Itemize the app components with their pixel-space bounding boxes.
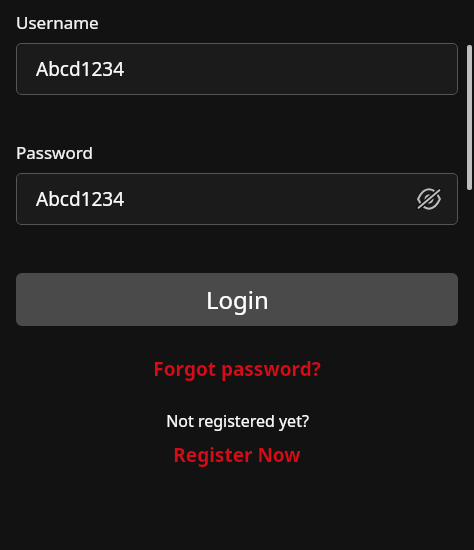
staticText: Not registered yet? bbox=[166, 410, 309, 432]
staticText: Login bbox=[206, 283, 269, 316]
button[interactable]: Abcd1234 bbox=[16, 43, 458, 95]
button[interactable]: Abcd1234 bbox=[16, 173, 458, 225]
staticText: Password bbox=[16, 141, 93, 164]
button[interactable]: Hide password bbox=[412, 182, 446, 216]
button[interactable]: Register Now bbox=[16, 442, 458, 468]
staticText: Register Now bbox=[173, 442, 301, 468]
staticText: Username bbox=[16, 11, 99, 34]
staticText: Forgot password? bbox=[153, 356, 321, 382]
button[interactable]: Login bbox=[16, 273, 458, 326]
button[interactable]: Forgot password? bbox=[16, 356, 458, 382]
staticText: Abcd1234 bbox=[36, 186, 125, 212]
staticText: Abcd1234 bbox=[36, 56, 125, 82]
